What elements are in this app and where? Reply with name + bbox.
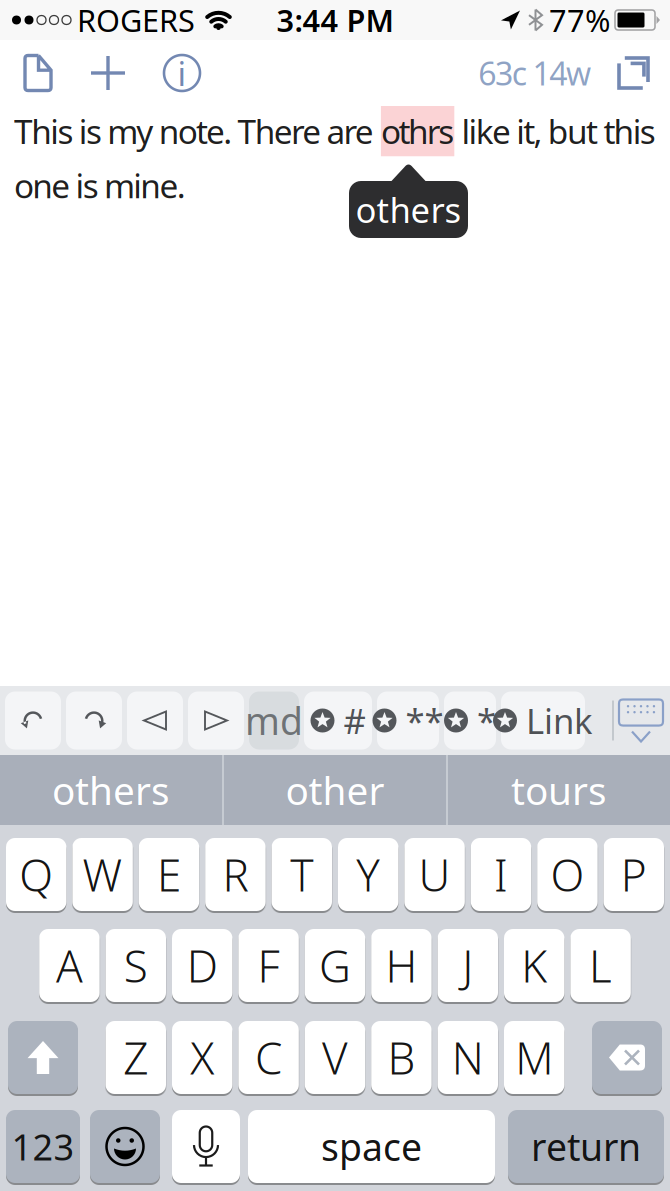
staticText: 123 bbox=[11, 1123, 74, 1170]
button[interactable]: Y bbox=[338, 838, 398, 911]
button[interactable]: return bbox=[508, 1110, 664, 1183]
button[interactable]: L bbox=[570, 929, 631, 1002]
staticText: J bbox=[462, 936, 473, 995]
button[interactable]: Expand bbox=[591, 58, 670, 88]
staticText: D bbox=[187, 936, 218, 995]
button[interactable]: J bbox=[438, 929, 498, 1002]
button[interactable]: T bbox=[272, 838, 332, 911]
button[interactable]: X bbox=[172, 1021, 232, 1094]
button[interactable]: D bbox=[172, 929, 232, 1002]
staticText: N bbox=[452, 1028, 484, 1087]
staticText: others bbox=[355, 186, 461, 232]
button[interactable]: G bbox=[305, 929, 365, 1002]
button[interactable]: Redo bbox=[66, 691, 122, 749]
button[interactable]: Undo bbox=[5, 691, 61, 749]
staticText: This is my note. There are bbox=[14, 109, 381, 153]
button[interactable]: Move cursor right bbox=[188, 691, 244, 749]
button[interactable]: Z bbox=[106, 1021, 166, 1094]
button[interactable]: N bbox=[438, 1021, 498, 1094]
button[interactable]: Add bbox=[51, 56, 125, 90]
button[interactable]: Delete bbox=[592, 1021, 662, 1094]
staticText: 63c 14w bbox=[478, 52, 591, 94]
button[interactable]: R bbox=[205, 838, 266, 911]
staticText: i bbox=[177, 51, 186, 95]
button[interactable]: B bbox=[371, 1021, 432, 1094]
staticText: T bbox=[290, 845, 313, 904]
staticText: L bbox=[589, 936, 612, 995]
button[interactable]: O bbox=[537, 838, 598, 911]
staticText: A bbox=[56, 936, 83, 995]
button[interactable]: Dictate bbox=[172, 1110, 240, 1183]
button[interactable]: Move cursor left bbox=[127, 691, 183, 749]
staticText: B bbox=[387, 1028, 415, 1087]
button[interactable]: M bbox=[504, 1021, 564, 1094]
staticText: md bbox=[245, 696, 303, 745]
button[interactable]: I bbox=[471, 838, 531, 911]
staticText: return bbox=[531, 1122, 641, 1171]
staticText: Y bbox=[356, 845, 380, 904]
staticText: Z bbox=[123, 1028, 148, 1087]
button[interactable]: tours bbox=[448, 755, 670, 825]
button[interactable]: 123 bbox=[6, 1110, 80, 1183]
staticText: Link bbox=[526, 697, 593, 743]
staticText: P bbox=[621, 845, 647, 904]
staticText: F bbox=[258, 936, 280, 995]
button[interactable]: Link bbox=[501, 691, 585, 749]
button[interactable]: U bbox=[404, 838, 465, 911]
button[interactable]: others bbox=[0, 755, 222, 825]
button[interactable]: K bbox=[504, 929, 564, 1002]
button[interactable]: Info bbox=[125, 51, 200, 95]
staticText: U bbox=[419, 845, 451, 904]
button[interactable]: ** bbox=[377, 691, 439, 749]
staticText: X bbox=[190, 1028, 214, 1087]
button[interactable]: S bbox=[106, 929, 166, 1002]
staticText: other bbox=[285, 764, 384, 816]
staticText: S bbox=[124, 936, 148, 995]
staticText: H bbox=[385, 936, 417, 995]
staticText: 77% bbox=[549, 0, 610, 40]
button[interactable]: space bbox=[248, 1110, 495, 1183]
button[interactable]: E bbox=[139, 838, 199, 911]
button[interactable]: Dismiss Keyboard bbox=[619, 699, 670, 741]
staticText: ** bbox=[405, 697, 443, 743]
staticText: M bbox=[515, 1028, 553, 1087]
staticText: like it, but this bbox=[454, 109, 656, 153]
button[interactable]: Q bbox=[6, 838, 66, 911]
staticText: space bbox=[321, 1122, 422, 1171]
staticText: O bbox=[550, 845, 584, 904]
button[interactable]: A bbox=[39, 929, 100, 1002]
staticText: I bbox=[494, 845, 508, 904]
staticText: others bbox=[52, 764, 170, 816]
staticText: 3:44 PM bbox=[276, 0, 393, 40]
button[interactable]: Shift bbox=[8, 1021, 78, 1094]
button[interactable]: Markdown bbox=[249, 691, 299, 749]
button[interactable]: * bbox=[444, 691, 496, 749]
staticText: W bbox=[83, 845, 123, 904]
staticText: # bbox=[343, 697, 365, 743]
button[interactable]: C bbox=[238, 1021, 299, 1094]
button[interactable]: other bbox=[224, 755, 446, 825]
staticText: C bbox=[255, 1028, 282, 1087]
staticText: E bbox=[157, 845, 181, 904]
staticText: R bbox=[222, 845, 248, 904]
button[interactable]: P bbox=[604, 838, 664, 911]
button[interactable]: H bbox=[371, 929, 432, 1002]
staticText: Q bbox=[19, 845, 53, 904]
staticText: tours bbox=[511, 764, 607, 816]
staticText: V bbox=[322, 1028, 348, 1087]
staticText: * bbox=[477, 697, 496, 743]
staticText: one is mine. bbox=[14, 163, 186, 208]
button[interactable]: V bbox=[305, 1021, 365, 1094]
staticText: K bbox=[521, 936, 547, 995]
button[interactable]: F bbox=[238, 929, 299, 1002]
button[interactable]: W bbox=[72, 838, 133, 911]
button[interactable]: Emoji bbox=[90, 1110, 160, 1183]
button[interactable]: # bbox=[304, 691, 372, 749]
staticText: G bbox=[319, 936, 351, 995]
staticText: othrs bbox=[381, 109, 454, 153]
staticText: ROGERS bbox=[77, 0, 195, 40]
button[interactable]: New Document bbox=[0, 55, 51, 90]
